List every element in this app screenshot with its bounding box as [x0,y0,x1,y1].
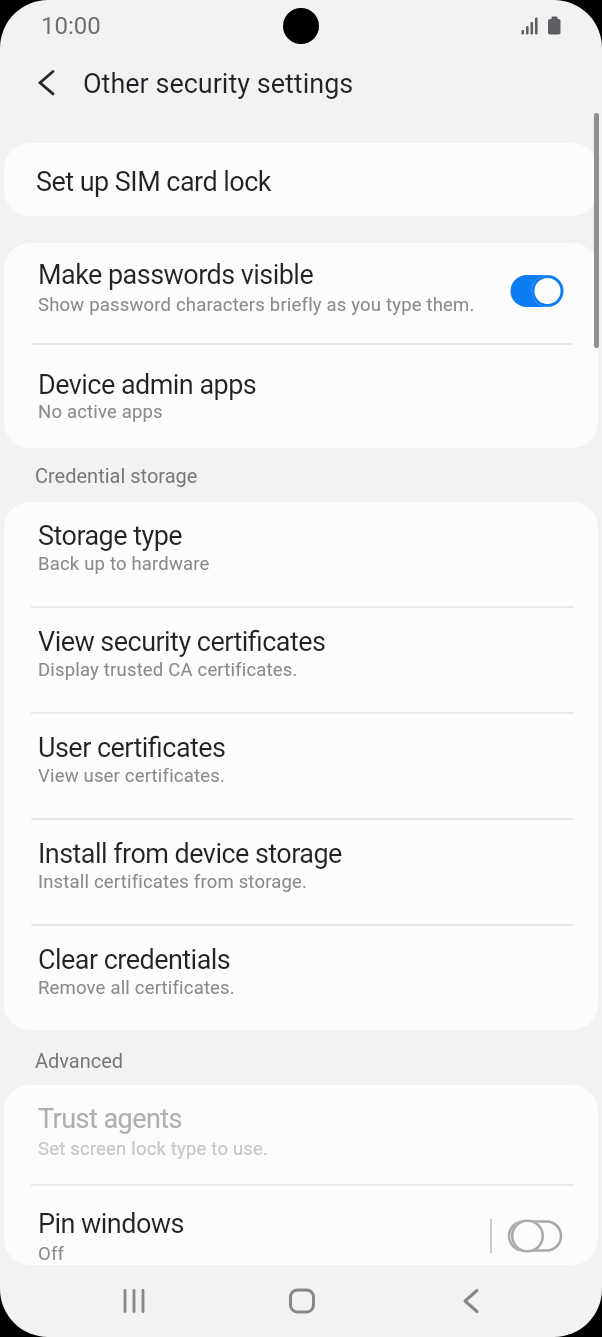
button[interactable]: Set up SIM card lock [4,143,598,216]
staticText: Show password characters briefly as you … [38,294,475,316]
button[interactable]: User certificates [4,714,598,818]
button[interactable] [509,273,565,309]
staticText: Other security settings [83,68,354,100]
button[interactable]: Device admin apps [4,345,598,448]
staticText: Pin windows [38,1208,184,1240]
staticText: View security certificates [38,626,326,658]
button[interactable]: Make passwords visible [4,243,598,343]
button[interactable]: View security certificates [4,608,598,712]
staticText: Advanced [35,1049,124,1072]
staticText: Display trusted CA certificates. [38,659,298,681]
staticText: Install certificates from storage. [38,871,308,893]
staticText: Storage type [38,520,183,552]
staticText: Trust agents [38,1103,182,1135]
button[interactable] [20,55,72,111]
button[interactable]: Install from device storage [4,820,598,924]
staticText: Make passwords visible [38,259,314,291]
staticText: 10:00 [41,12,101,40]
staticText: Install from device storage [38,838,342,870]
button[interactable] [278,1277,326,1325]
staticText: Set up SIM card lock [36,166,271,198]
staticText: Credential storage [35,464,198,487]
button[interactable]: Pin windows [4,1186,598,1265]
staticText: User certificates [38,732,226,764]
staticText: Device admin apps [38,369,257,401]
staticText: Clear credentials [38,944,231,976]
staticText: Off [38,1243,65,1265]
button[interactable]: Trust agents [4,1085,598,1184]
button[interactable] [447,1277,495,1325]
staticText: No active apps [38,401,163,423]
button[interactable] [110,1277,158,1325]
button[interactable]: Storage type [4,502,598,606]
staticText: View user certificates. [38,765,225,787]
staticText: Remove all certificates. [38,977,235,999]
staticText: Set screen lock type to use. [38,1138,269,1160]
button[interactable] [507,1218,563,1254]
button[interactable]: Clear credentials [4,926,598,1030]
staticText: Back up to hardware [38,553,210,575]
